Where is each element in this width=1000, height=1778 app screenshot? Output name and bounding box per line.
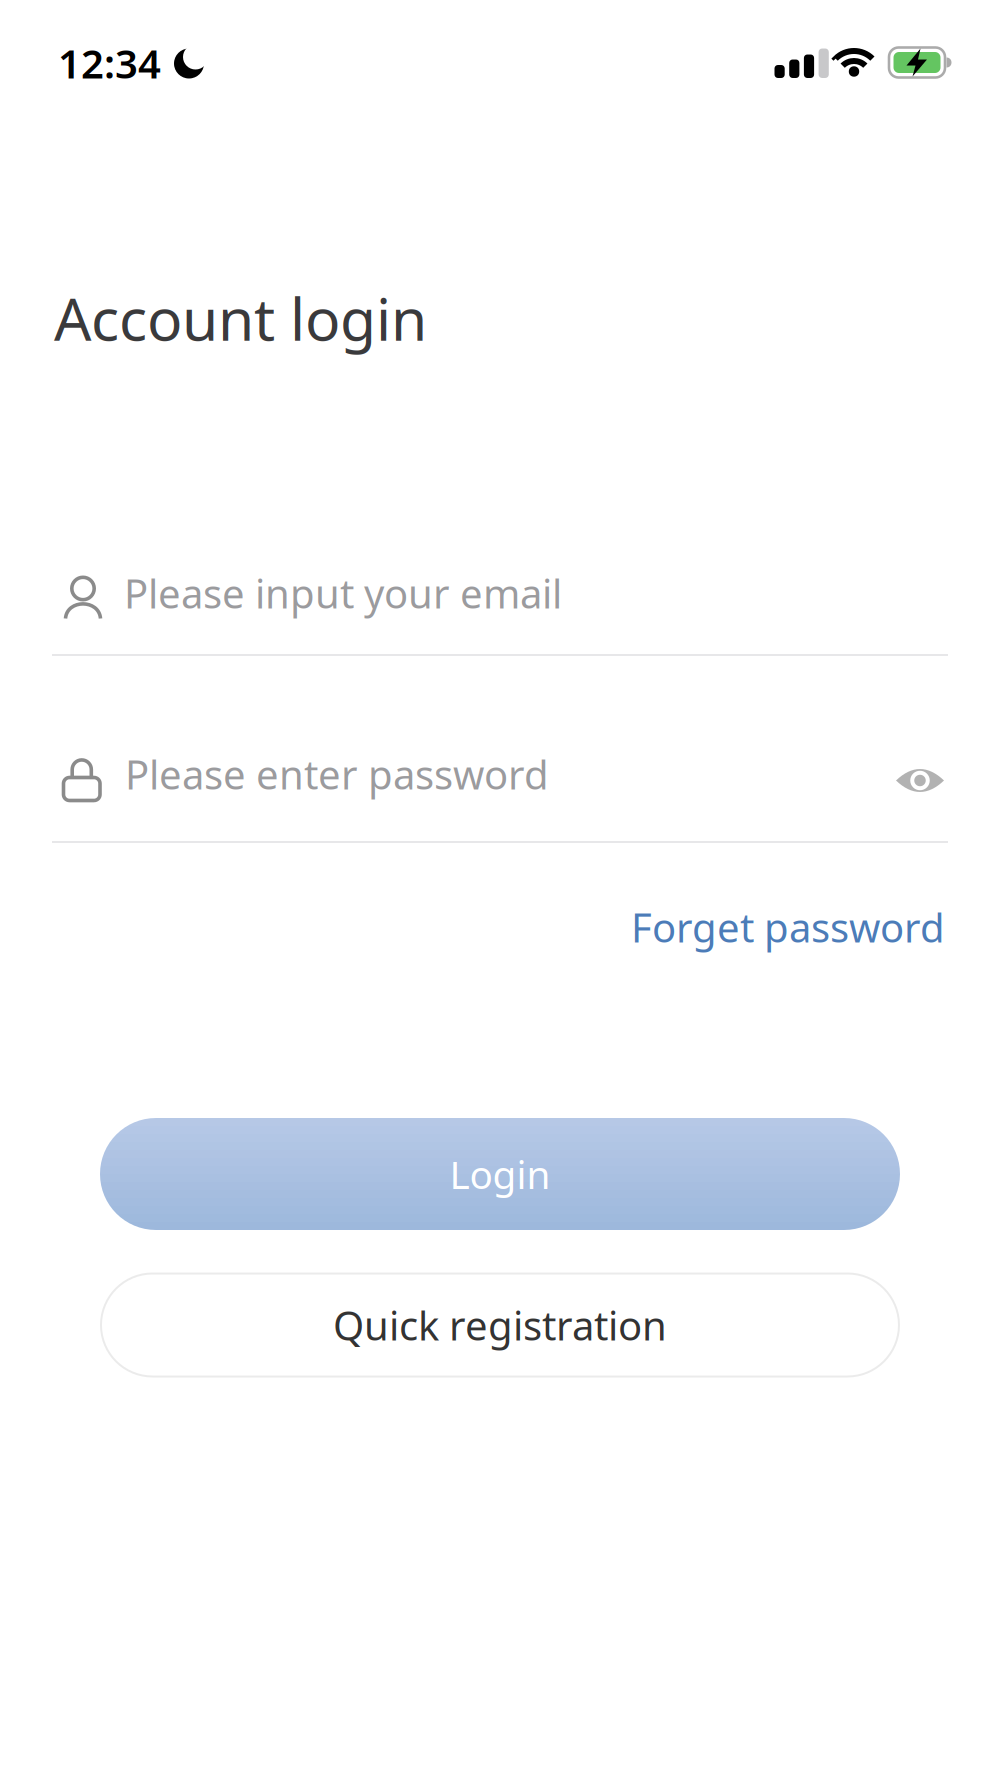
- staticText: Quick registration: [333, 1298, 667, 1351]
- button[interactable]: Quick registration: [100, 1272, 900, 1377]
- button[interactable]: Show password: [888, 754, 952, 806]
- button[interactable]: Forget password: [631, 900, 945, 953]
- button[interactable]: Login: [100, 1118, 900, 1230]
- staticText: Forget password: [631, 900, 945, 953]
- staticText: 12:34: [58, 36, 161, 89]
- staticText: Login: [449, 1148, 550, 1200]
- staticText: Please input your email: [124, 566, 562, 619]
- staticText: Account login: [54, 279, 427, 357]
- staticText: Please enter password: [125, 747, 549, 800]
